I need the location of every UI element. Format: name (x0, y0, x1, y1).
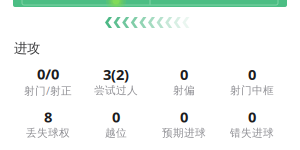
staticText: 射门中框 (230, 84, 274, 97)
button[interactable]: 0/0 (14, 64, 82, 98)
staticText: 尝试过人 (94, 84, 138, 97)
staticText: 0 (112, 107, 120, 126)
staticText: 3(2) (103, 64, 129, 84)
staticText: 8 (44, 107, 52, 126)
button[interactable]: 0 (218, 64, 286, 97)
staticText: 0 (180, 107, 188, 126)
staticText: 预期进球 (162, 126, 206, 140)
staticText: 0/0 (37, 64, 59, 83)
staticText: 0 (248, 64, 256, 84)
staticText: 越位 (105, 126, 127, 140)
staticText: 射偏 (173, 84, 195, 97)
staticText: 错失进球 (230, 126, 274, 140)
staticText: 0 (248, 107, 256, 126)
button[interactable]: 0 (150, 107, 218, 140)
button[interactable]: 3(2) (82, 64, 150, 97)
staticText: 丢失球权 (26, 126, 70, 140)
staticText: 进攻 (14, 40, 40, 56)
button[interactable]: 0 (150, 64, 218, 97)
button[interactable]: 0 (218, 107, 286, 140)
button[interactable]: 8 (14, 107, 82, 140)
staticText: 射门/射正 (24, 83, 72, 98)
button[interactable]: 0 (82, 107, 150, 140)
staticText: 0 (180, 64, 188, 84)
